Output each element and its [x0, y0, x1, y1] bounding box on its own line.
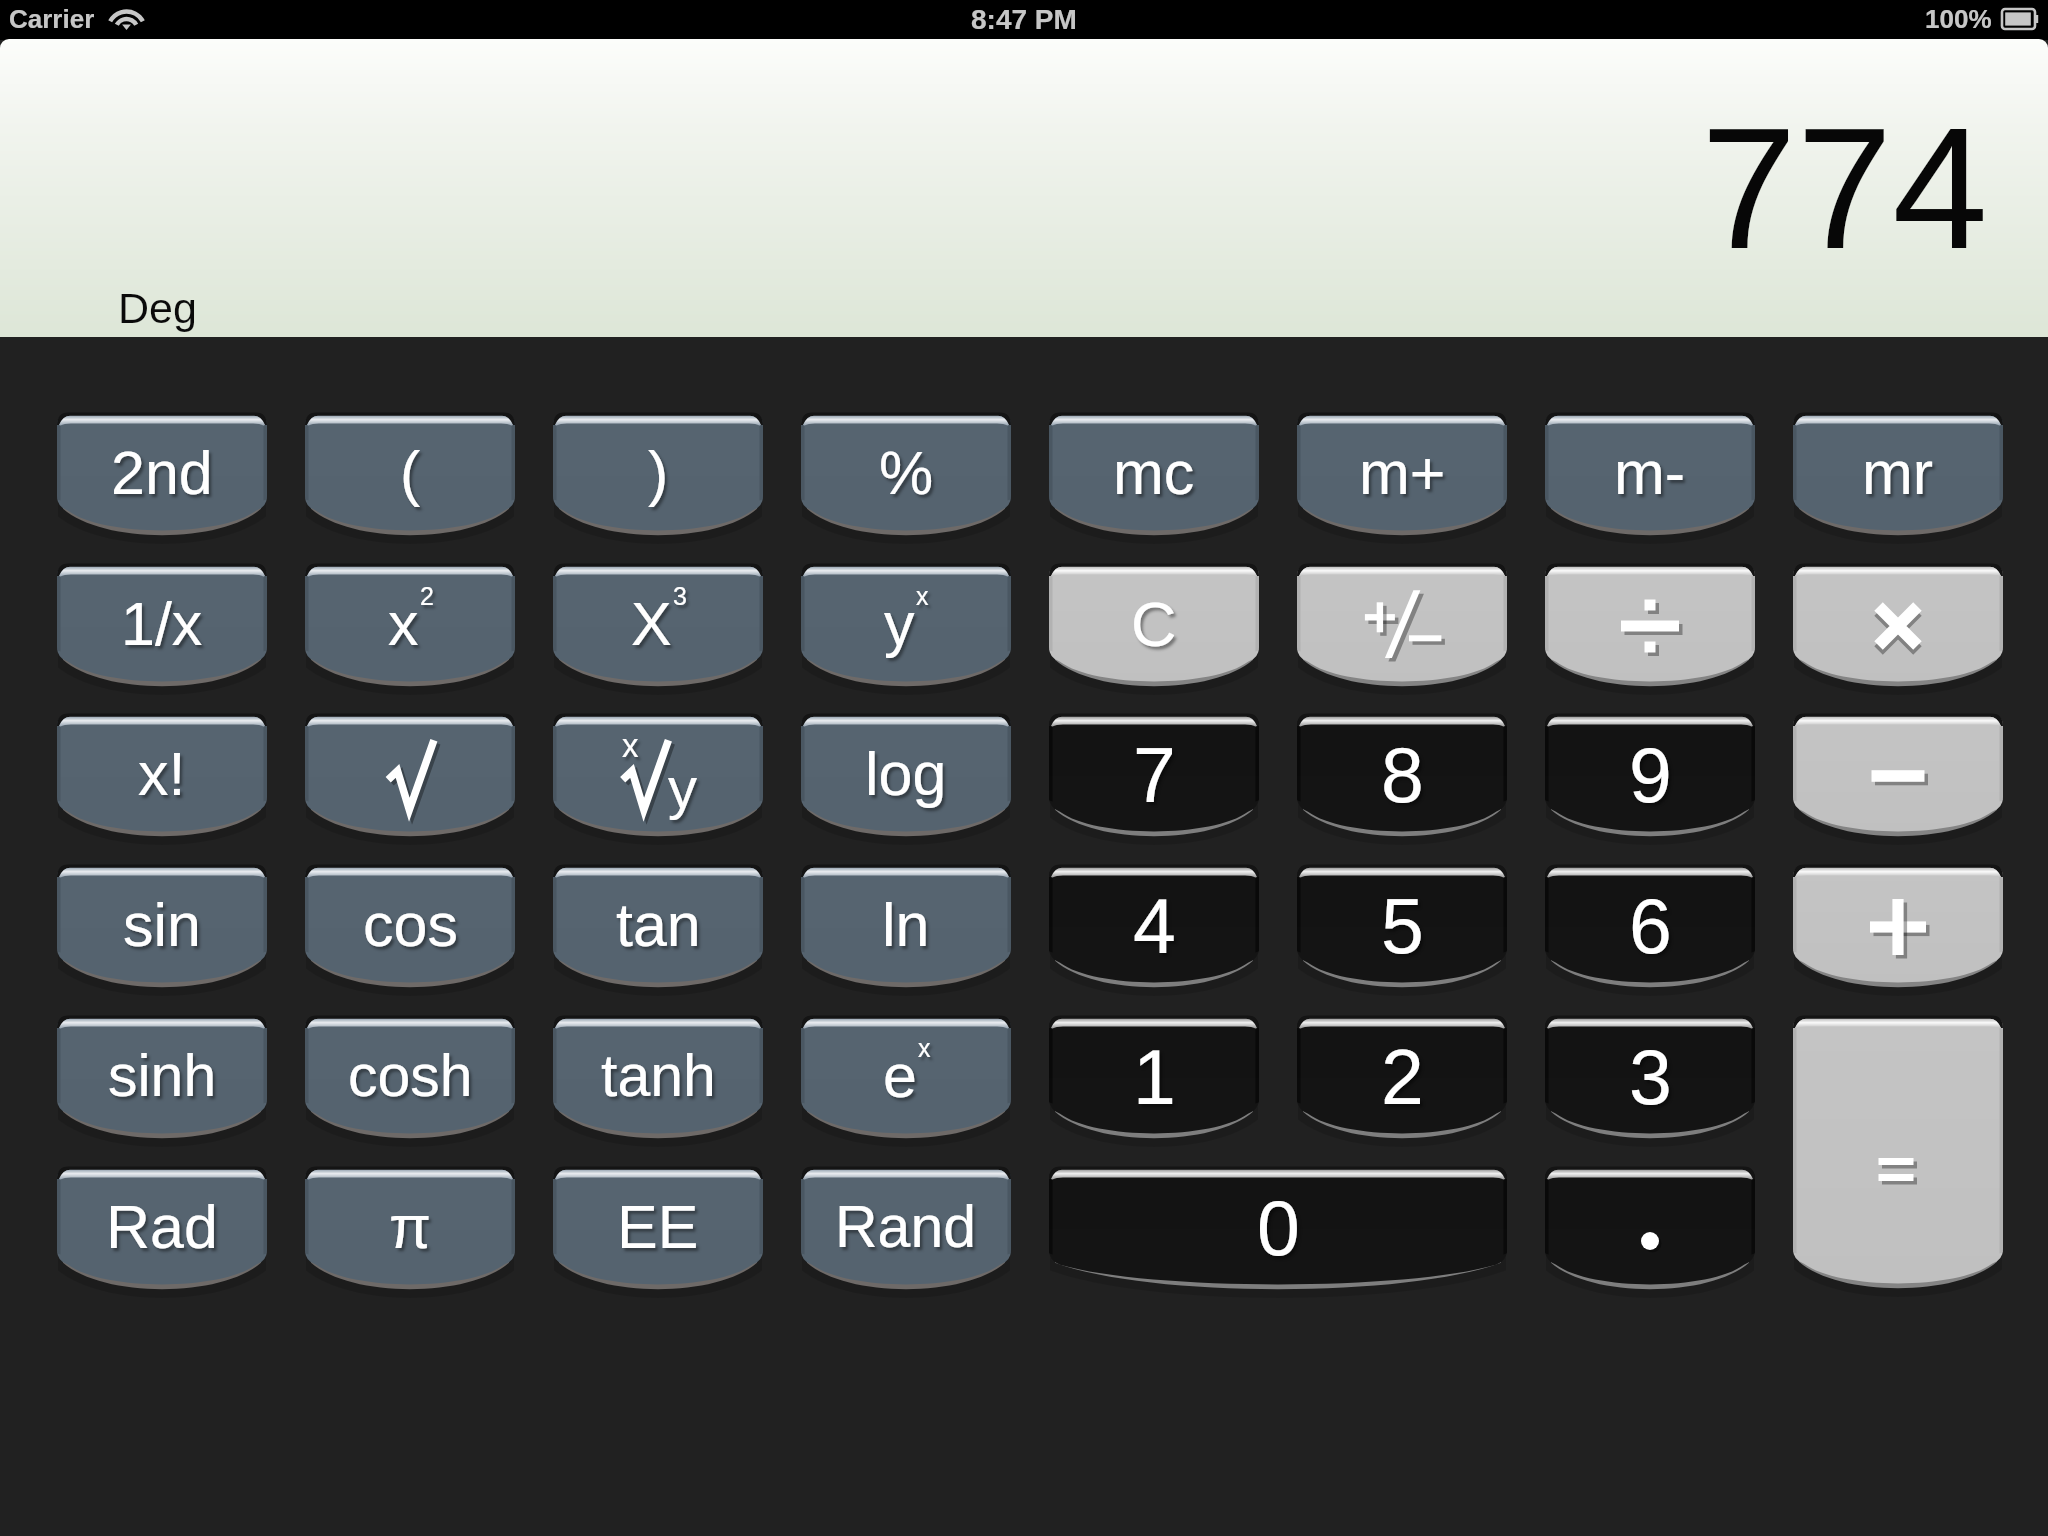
- staticText: 4: [1133, 883, 1176, 969]
- button[interactable]: 1/x: [57, 565, 267, 684]
- staticText: x: [916, 582, 929, 610]
- button[interactable]: tanh: [553, 1017, 763, 1136]
- staticText: 9: [1629, 732, 1672, 818]
- staticText: mc: [1113, 439, 1195, 507]
- button[interactable]: X: [553, 565, 763, 684]
- staticText: 0: [1257, 1185, 1300, 1271]
- button[interactable]: Decimal point: [1545, 1168, 1755, 1287]
- staticText: π: [389, 1193, 432, 1261]
- staticText: x: [918, 1034, 931, 1062]
- button[interactable]: Minus: [1793, 715, 2003, 834]
- button[interactable]: EE: [553, 1168, 763, 1287]
- button[interactable]: Equals: [1793, 1017, 2003, 1286]
- staticText: 100%: [1925, 4, 1992, 33]
- staticText: x: [622, 727, 639, 764]
- button[interactable]: 6: [1545, 866, 1755, 985]
- staticText: 8:47 PM: [971, 4, 1077, 35]
- staticText: y: [668, 755, 697, 820]
- staticText: cos: [363, 891, 458, 959]
- staticText: sinh: [108, 1043, 217, 1109]
- staticText: 774: [1701, 92, 1988, 284]
- button[interactable]: ln: [801, 866, 1011, 985]
- button[interactable]: 3: [1545, 1017, 1755, 1136]
- button[interactable]: y: [801, 565, 1011, 684]
- staticText: x: [388, 590, 419, 658]
- staticText: ln: [882, 891, 930, 959]
- button[interactable]: 0: [1049, 1168, 1507, 1287]
- staticText: 7: [1133, 732, 1176, 818]
- staticText: EE: [617, 1193, 699, 1261]
- button[interactable]: %: [801, 414, 1011, 533]
- button[interactable]: x!: [57, 715, 267, 834]
- staticText: sin: [123, 891, 201, 959]
- staticText: %: [879, 439, 934, 507]
- staticText: x!: [138, 740, 186, 808]
- button[interactable]: 9: [1545, 715, 1755, 834]
- button[interactable]: 5: [1297, 866, 1507, 985]
- staticText: Carrier: [9, 4, 95, 33]
- button[interactable]: m+: [1297, 414, 1507, 533]
- button[interactable]: 4: [1049, 866, 1259, 985]
- button[interactable]: Plus: [1793, 866, 2003, 985]
- staticText: Rand: [835, 1194, 977, 1260]
- button[interactable]: C: [1049, 565, 1259, 684]
- button[interactable]: m-: [1545, 414, 1755, 533]
- button[interactable]: 2nd: [57, 414, 267, 533]
- staticText: Deg: [118, 284, 197, 332]
- button[interactable]: Rad: [57, 1168, 267, 1287]
- staticText: m+: [1359, 439, 1446, 507]
- staticText: 1: [1133, 1034, 1176, 1120]
- staticText: 2nd: [111, 439, 213, 507]
- button[interactable]: (: [305, 414, 515, 533]
- staticText: mr: [1862, 439, 1934, 507]
- staticText: log: [865, 740, 947, 808]
- button[interactable]: sin: [57, 866, 267, 985]
- button[interactable]: Rand: [801, 1168, 1011, 1287]
- staticText: 5: [1381, 883, 1424, 969]
- button[interactable]: Plus minus: [1297, 565, 1507, 684]
- button[interactable]: tan: [553, 866, 763, 985]
- button[interactable]: Divide: [1545, 565, 1755, 684]
- staticText: 2: [1381, 1034, 1424, 1120]
- staticText: 8: [1381, 732, 1424, 818]
- staticText: tan: [616, 891, 701, 959]
- staticText: 3: [1629, 1034, 1672, 1120]
- staticText: tanh: [601, 1043, 716, 1109]
- staticText: 2: [420, 582, 434, 610]
- button[interactable]: sinh: [57, 1017, 267, 1136]
- button[interactable]: 2: [1297, 1017, 1507, 1136]
- button[interactable]: x: [305, 565, 515, 684]
- button[interactable]: log: [801, 715, 1011, 834]
- button[interactable]: 1: [1049, 1017, 1259, 1136]
- staticText: y: [884, 590, 915, 658]
- button[interactable]: mr: [1793, 414, 2003, 533]
- button[interactable]: Multiply: [1793, 565, 2003, 684]
- button[interactable]: cosh: [305, 1017, 515, 1136]
- staticText: Rad: [106, 1193, 218, 1261]
- button[interactable]: ): [553, 414, 763, 533]
- button[interactable]: mc: [1049, 414, 1259, 533]
- staticText: ): [648, 439, 669, 507]
- staticText: C: [1131, 589, 1177, 659]
- button[interactable]: x root y: [553, 715, 763, 834]
- button[interactable]: 7: [1049, 715, 1259, 834]
- staticText: (: [400, 439, 421, 507]
- button[interactable]: Square root: [305, 715, 515, 834]
- staticText: m-: [1614, 439, 1686, 507]
- staticText: 3: [673, 582, 687, 610]
- button[interactable]: e: [801, 1017, 1011, 1136]
- staticText: 1/x: [121, 590, 203, 658]
- staticText: X: [631, 590, 672, 658]
- button[interactable]: 8: [1297, 715, 1507, 834]
- staticText: e: [883, 1042, 917, 1110]
- button[interactable]: π: [305, 1168, 515, 1287]
- staticText: 6: [1629, 883, 1672, 969]
- button[interactable]: cos: [305, 866, 515, 985]
- staticText: cosh: [348, 1043, 473, 1109]
